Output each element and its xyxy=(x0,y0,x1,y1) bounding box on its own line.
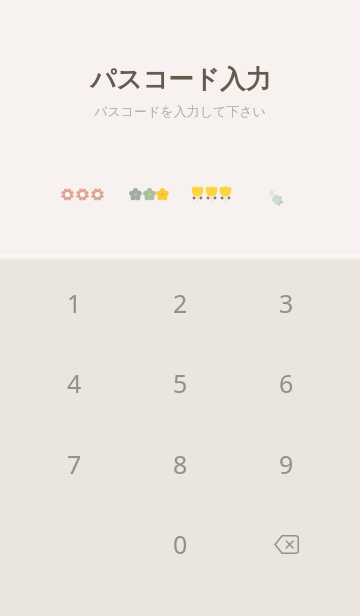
staticText: 8 xyxy=(173,447,188,481)
staticText: パスコード入力 xyxy=(90,63,271,95)
staticText: 5 xyxy=(173,366,188,400)
button[interactable]: 4 xyxy=(21,343,127,423)
button[interactable]: Backspace xyxy=(233,504,339,584)
button[interactable]: 8 xyxy=(127,424,233,504)
staticText: 2 xyxy=(173,286,188,320)
button[interactable]: 1 xyxy=(21,263,127,343)
staticText: 0 xyxy=(173,527,188,561)
staticText: 7 xyxy=(67,447,82,481)
staticText: パスコードを入力して下さい xyxy=(94,103,266,119)
staticText: 6 xyxy=(279,366,294,400)
staticText: 9 xyxy=(279,447,294,481)
button[interactable]: 3 xyxy=(233,263,339,343)
button[interactable]: 9 xyxy=(233,424,339,504)
button[interactable]: 6 xyxy=(233,343,339,423)
button[interactable]: 5 xyxy=(127,343,233,423)
staticText: 1 xyxy=(67,286,82,320)
button[interactable]: 7 xyxy=(21,424,127,504)
button[interactable]: 2 xyxy=(127,263,233,343)
staticText: 4 xyxy=(67,366,82,400)
staticText: 3 xyxy=(279,286,294,320)
button[interactable]: 0 xyxy=(127,504,233,584)
